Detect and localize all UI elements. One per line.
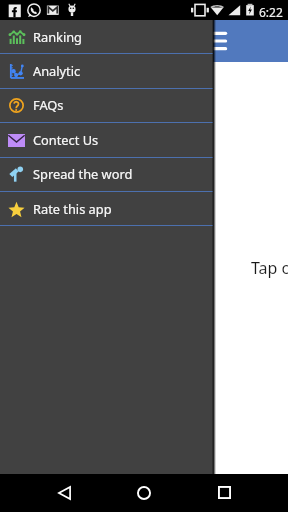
button[interactable]: Home	[120, 475, 168, 510]
staticText: Contect Us	[33, 131, 99, 148]
button[interactable]: Rate this app	[0, 192, 213, 226]
staticText: Spread the word	[33, 165, 133, 182]
button[interactable]: Analytic	[0, 54, 213, 88]
staticText: Ranking	[33, 28, 82, 45]
button[interactable]: FAQs	[0, 88, 213, 122]
button[interactable]: Contect Us	[0, 123, 213, 157]
staticText: Rate this app	[33, 200, 112, 217]
button[interactable]: Spread the word	[0, 157, 213, 191]
button[interactable]: Recent apps	[200, 475, 248, 510]
staticText: Tap on the menu icon above	[251, 257, 288, 279]
staticText: FAQs	[33, 96, 64, 113]
staticText: 6:22	[259, 4, 283, 20]
staticText: Analytic	[33, 62, 81, 79]
button[interactable]: Ranking	[0, 20, 213, 54]
button[interactable]: Back	[40, 475, 88, 510]
button[interactable]: Open navigation drawer	[202, 24, 236, 58]
